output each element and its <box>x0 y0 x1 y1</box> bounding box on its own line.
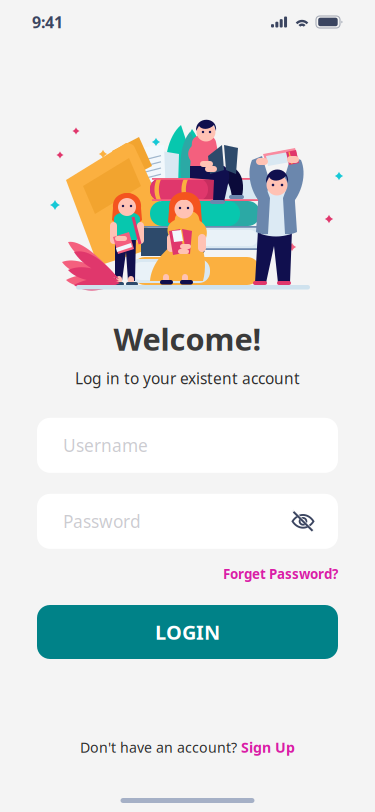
staticText: Log in to your existent account <box>75 368 300 389</box>
staticText: LOGIN <box>155 618 220 646</box>
button[interactable]: Forget Password? <box>223 561 338 587</box>
staticText: 9:41 <box>32 11 63 33</box>
button[interactable]: Sign Up <box>241 738 295 757</box>
staticText: Sign Up <box>241 738 295 757</box>
staticText: Username <box>63 433 148 457</box>
staticText: Welcome! <box>113 318 261 360</box>
staticText: Password <box>63 509 141 533</box>
button[interactable]: LOGIN <box>37 605 338 659</box>
staticText: Forget Password? <box>223 565 338 583</box>
staticText: Don't have an account? <box>80 738 237 757</box>
button[interactable]: Show password <box>290 508 316 534</box>
